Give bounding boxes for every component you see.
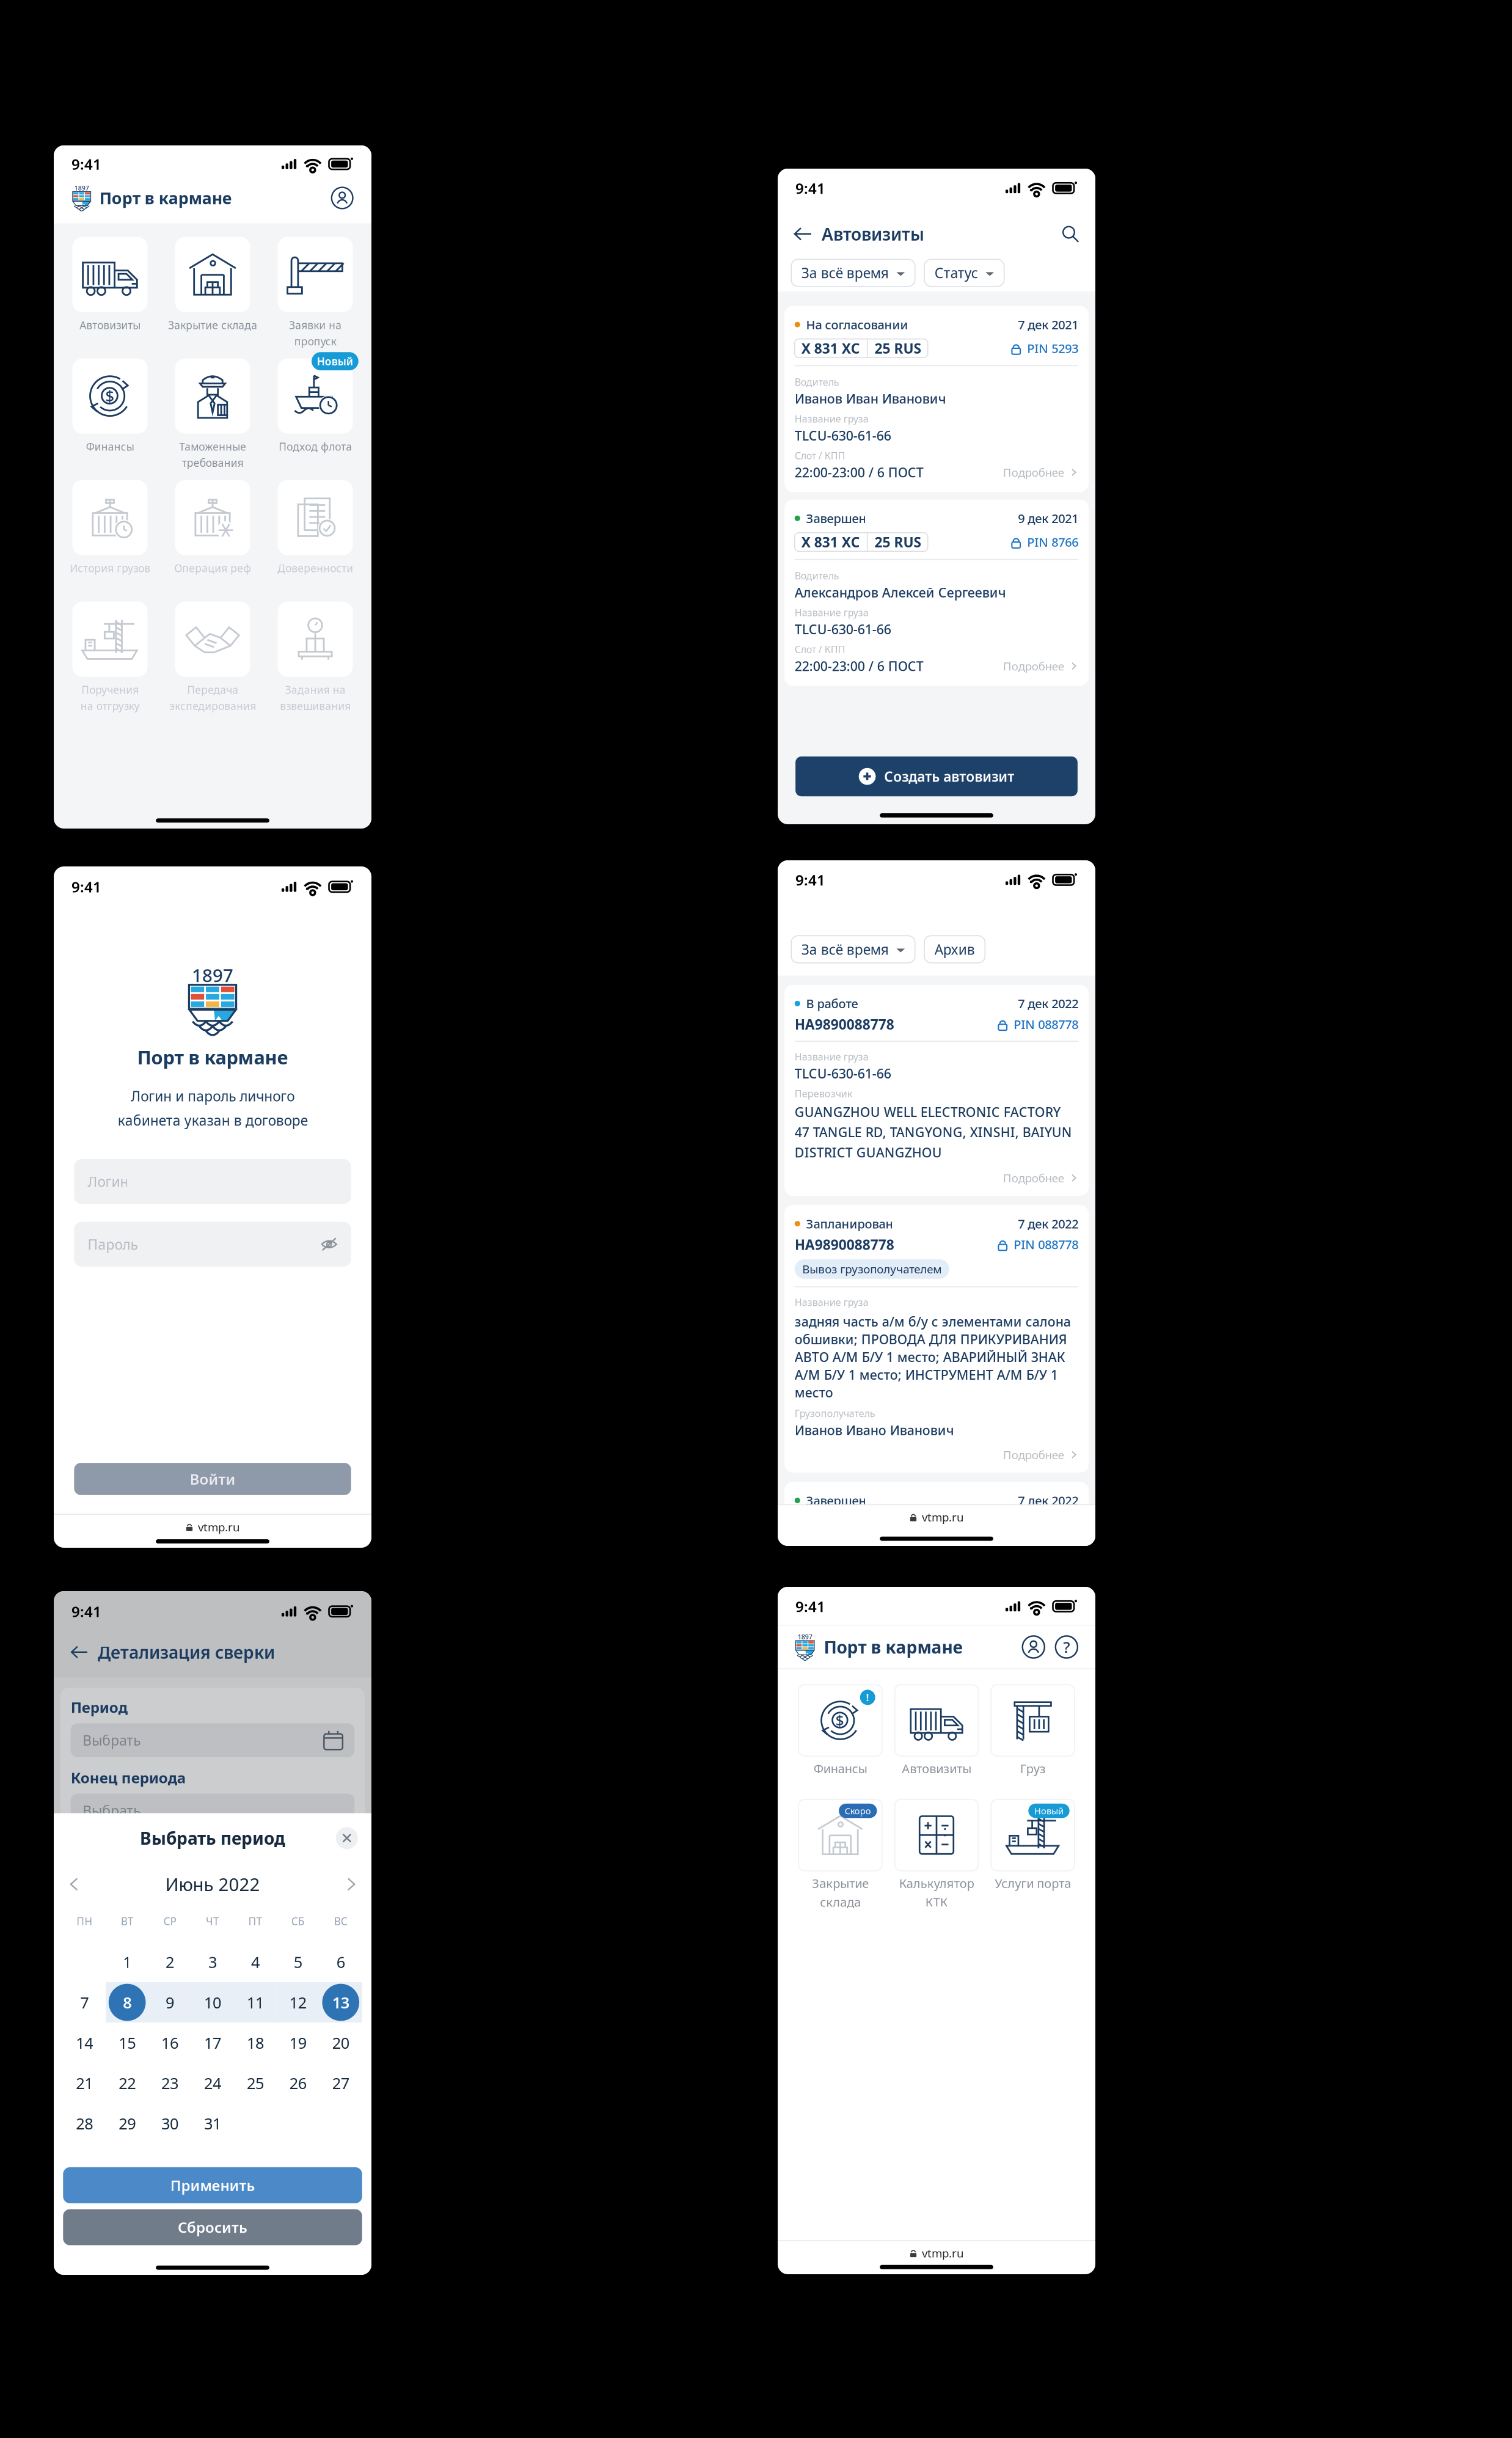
button[interactable]: Операция реф xyxy=(175,480,250,597)
button[interactable]: Поручения на отгрузку xyxy=(72,602,148,718)
button[interactable]: 6 xyxy=(319,1942,362,1982)
button[interactable]: Сбросить xyxy=(63,2209,362,2245)
staticText: Подробнее xyxy=(1003,659,1064,674)
button[interactable]: 9 xyxy=(149,1982,191,2023)
button[interactable]: Детализация сверки xyxy=(54,1639,371,1665)
button[interactable]: Подробнее xyxy=(1003,1447,1078,1462)
staticText: Название груза xyxy=(795,412,869,425)
staticText: Слот / КПП xyxy=(795,643,845,656)
button[interactable]: $ xyxy=(798,1685,882,1798)
button[interactable]: За всё время xyxy=(791,259,915,286)
staticText: Операция реф xyxy=(174,561,251,575)
staticText: Войти xyxy=(190,1469,236,1489)
button[interactable]: Закрытие склада xyxy=(175,237,250,354)
staticText: На согласовании xyxy=(806,316,908,333)
button[interactable]: Архив xyxy=(924,936,985,963)
button[interactable]: 1 xyxy=(106,1942,149,1982)
button[interactable]: Назад xyxy=(794,225,812,243)
button[interactable]: Создать автовизит xyxy=(795,757,1078,796)
staticText: HA9890088778 xyxy=(795,1015,894,1033)
button[interactable]: 23 xyxy=(149,2063,191,2103)
button[interactable]: Подробнее xyxy=(1003,465,1078,480)
button[interactable]: Подробнее xyxy=(1003,659,1078,674)
button[interactable]: Поиск xyxy=(1061,225,1079,243)
button[interactable]: 3 xyxy=(191,1942,234,1982)
button[interactable]: 20 xyxy=(319,2023,362,2063)
staticText: 15 xyxy=(119,2032,136,2053)
button[interactable]: Профиль xyxy=(1022,1636,1045,1658)
button[interactable]: 14 xyxy=(63,2023,106,2063)
button[interactable]: Пароль xyxy=(74,1222,351,1267)
button[interactable]: Подробнее xyxy=(1003,1170,1078,1186)
button[interactable]: Статус xyxy=(924,259,1004,286)
staticText: Пароль xyxy=(88,1235,138,1253)
button[interactable]: Заявки на пропуск xyxy=(278,237,353,354)
button[interactable]: 31 xyxy=(191,2103,234,2144)
staticText: Название груза xyxy=(795,1296,869,1309)
button[interactable]: 4 xyxy=(234,1942,277,1982)
button[interactable]: Следующий месяц xyxy=(343,1876,360,1893)
button[interactable]: Логин xyxy=(74,1159,351,1204)
button[interactable]: 10 xyxy=(191,1982,234,2023)
button[interactable]: 11 xyxy=(234,1982,277,2023)
button[interactable]: 27 xyxy=(319,2063,362,2103)
button[interactable]: Передача экспедирования xyxy=(175,602,250,718)
button[interactable]: $ xyxy=(72,358,148,475)
button[interactable]: Закрыть xyxy=(336,1827,358,1849)
button[interactable]: Калькулятор КТК xyxy=(895,1799,978,1912)
button[interactable]: 12 xyxy=(277,1982,319,2023)
button[interactable]: Новый xyxy=(991,1799,1075,1912)
button[interactable]: 13 xyxy=(319,1982,362,2023)
staticText: 6 xyxy=(336,1952,345,1972)
staticText: 22 xyxy=(119,2073,136,2093)
staticText: СР xyxy=(163,1914,176,1928)
button[interactable]: 7 xyxy=(63,1982,106,2023)
button[interactable]: Автовизиты xyxy=(895,1685,978,1798)
button[interactable]: Новый xyxy=(278,358,353,475)
staticText: GUANGZHOU WELL ELECTRONIC FACTORY 47 TAN… xyxy=(795,1103,1072,1161)
staticText: задняя часть а/м б/у с элементами салона… xyxy=(795,1313,1071,1401)
button[interactable]: Применить xyxy=(63,2167,362,2203)
button[interactable]: Автовизиты xyxy=(72,237,148,354)
button[interactable]: 22 xyxy=(106,2063,149,2103)
button[interactable]: 2 xyxy=(149,1942,191,1982)
button[interactable]: 8 xyxy=(106,1982,149,2023)
staticText: За всё время xyxy=(801,264,889,282)
staticText: Выбрать xyxy=(83,1801,141,1820)
button[interactable]: 15 xyxy=(106,2023,149,2063)
button[interactable]: 29 xyxy=(106,2103,149,2144)
button[interactable]: 21 xyxy=(63,2063,106,2103)
button[interactable]: Помощь xyxy=(1045,1636,1078,1658)
button[interactable]: За всё время xyxy=(791,936,915,963)
button[interactable]: 5 xyxy=(277,1942,319,1982)
button[interactable]: Таможенные требования xyxy=(175,358,250,475)
staticText: 17 xyxy=(204,2032,221,2053)
button[interactable]: Задания на взвешивания xyxy=(278,602,353,718)
button[interactable]: 17 xyxy=(191,2023,234,2063)
button[interactable]: 19 xyxy=(277,2023,319,2063)
button[interactable]: 24 xyxy=(191,2063,234,2103)
staticText: Период xyxy=(71,1697,127,1717)
button[interactable]: 30 xyxy=(149,2103,191,2144)
button[interactable]: Войти xyxy=(74,1463,351,1495)
staticText: Иванов Ивано Иванович xyxy=(795,1421,954,1439)
button[interactable]: Доверенности xyxy=(278,480,353,597)
button[interactable]: 18 xyxy=(234,2023,277,2063)
button[interactable]: 28 xyxy=(63,2103,106,2144)
button[interactable]: 25 xyxy=(234,2063,277,2103)
staticText: vtmp.ru xyxy=(922,2245,964,2261)
button[interactable]: Предыдущий месяц xyxy=(66,1876,83,1893)
button[interactable]: История грузов xyxy=(72,480,148,597)
button[interactable]: Профиль xyxy=(332,187,353,209)
staticText: 24 xyxy=(204,2073,221,2093)
button[interactable]: Скоро xyxy=(798,1799,882,1912)
staticText: В работе xyxy=(806,995,858,1012)
button[interactable]: Груз xyxy=(991,1685,1075,1798)
button[interactable]: 16 xyxy=(149,2023,191,2063)
button[interactable]: 26 xyxy=(277,2063,319,2103)
